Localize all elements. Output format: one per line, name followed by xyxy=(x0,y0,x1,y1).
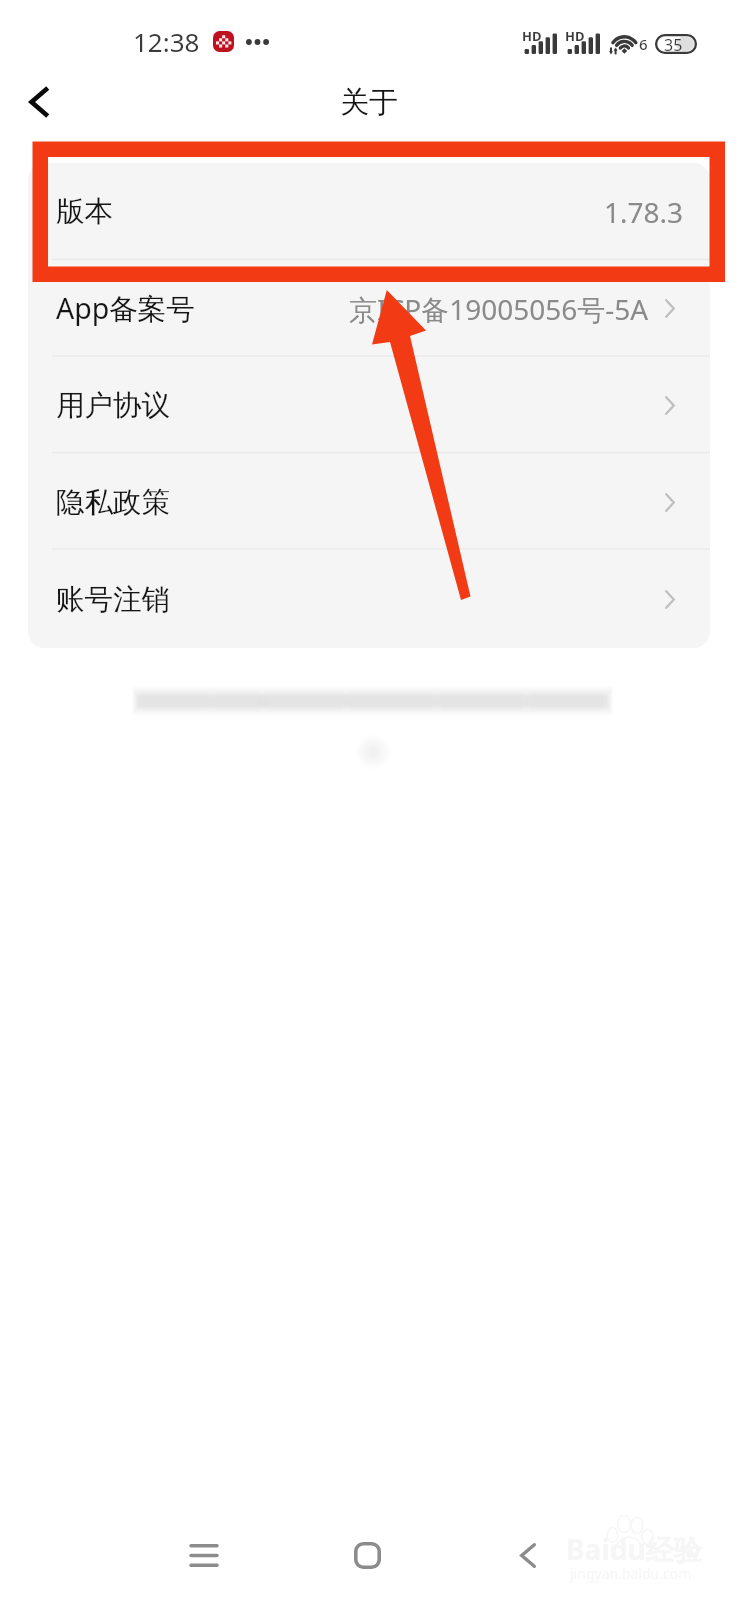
staticText: 12:38 xyxy=(133,24,200,59)
staticText: 6 xyxy=(639,34,648,54)
button[interactable]: App备案号 xyxy=(28,260,710,357)
staticText: App备案号 xyxy=(56,289,195,328)
button[interactable]: Home xyxy=(337,1525,397,1585)
button[interactable]: Recent apps xyxy=(174,1525,234,1585)
staticText: 账号注销 xyxy=(56,582,170,618)
staticText: 35 xyxy=(664,34,683,54)
staticText: HD xyxy=(522,27,542,45)
button[interactable]: 用户协议 xyxy=(28,357,710,454)
staticText: HD xyxy=(565,27,585,45)
button[interactable]: 隐私政策 xyxy=(28,454,710,551)
button[interactable]: Back xyxy=(10,74,66,130)
button[interactable]: Back xyxy=(498,1525,558,1585)
staticText: 版本 xyxy=(56,194,113,230)
staticText: 1.78.3 xyxy=(604,193,684,231)
staticText: 用户协议 xyxy=(56,388,170,424)
button[interactable]: 账号注销 xyxy=(28,551,710,648)
staticText: Baidu经验 xyxy=(566,1530,702,1568)
staticText: 京ICP备19005056号-5A xyxy=(349,290,649,328)
staticText: 隐私政策 xyxy=(56,485,170,521)
button[interactable]: 版本 xyxy=(28,163,710,260)
staticText: 关于 xyxy=(340,84,398,121)
